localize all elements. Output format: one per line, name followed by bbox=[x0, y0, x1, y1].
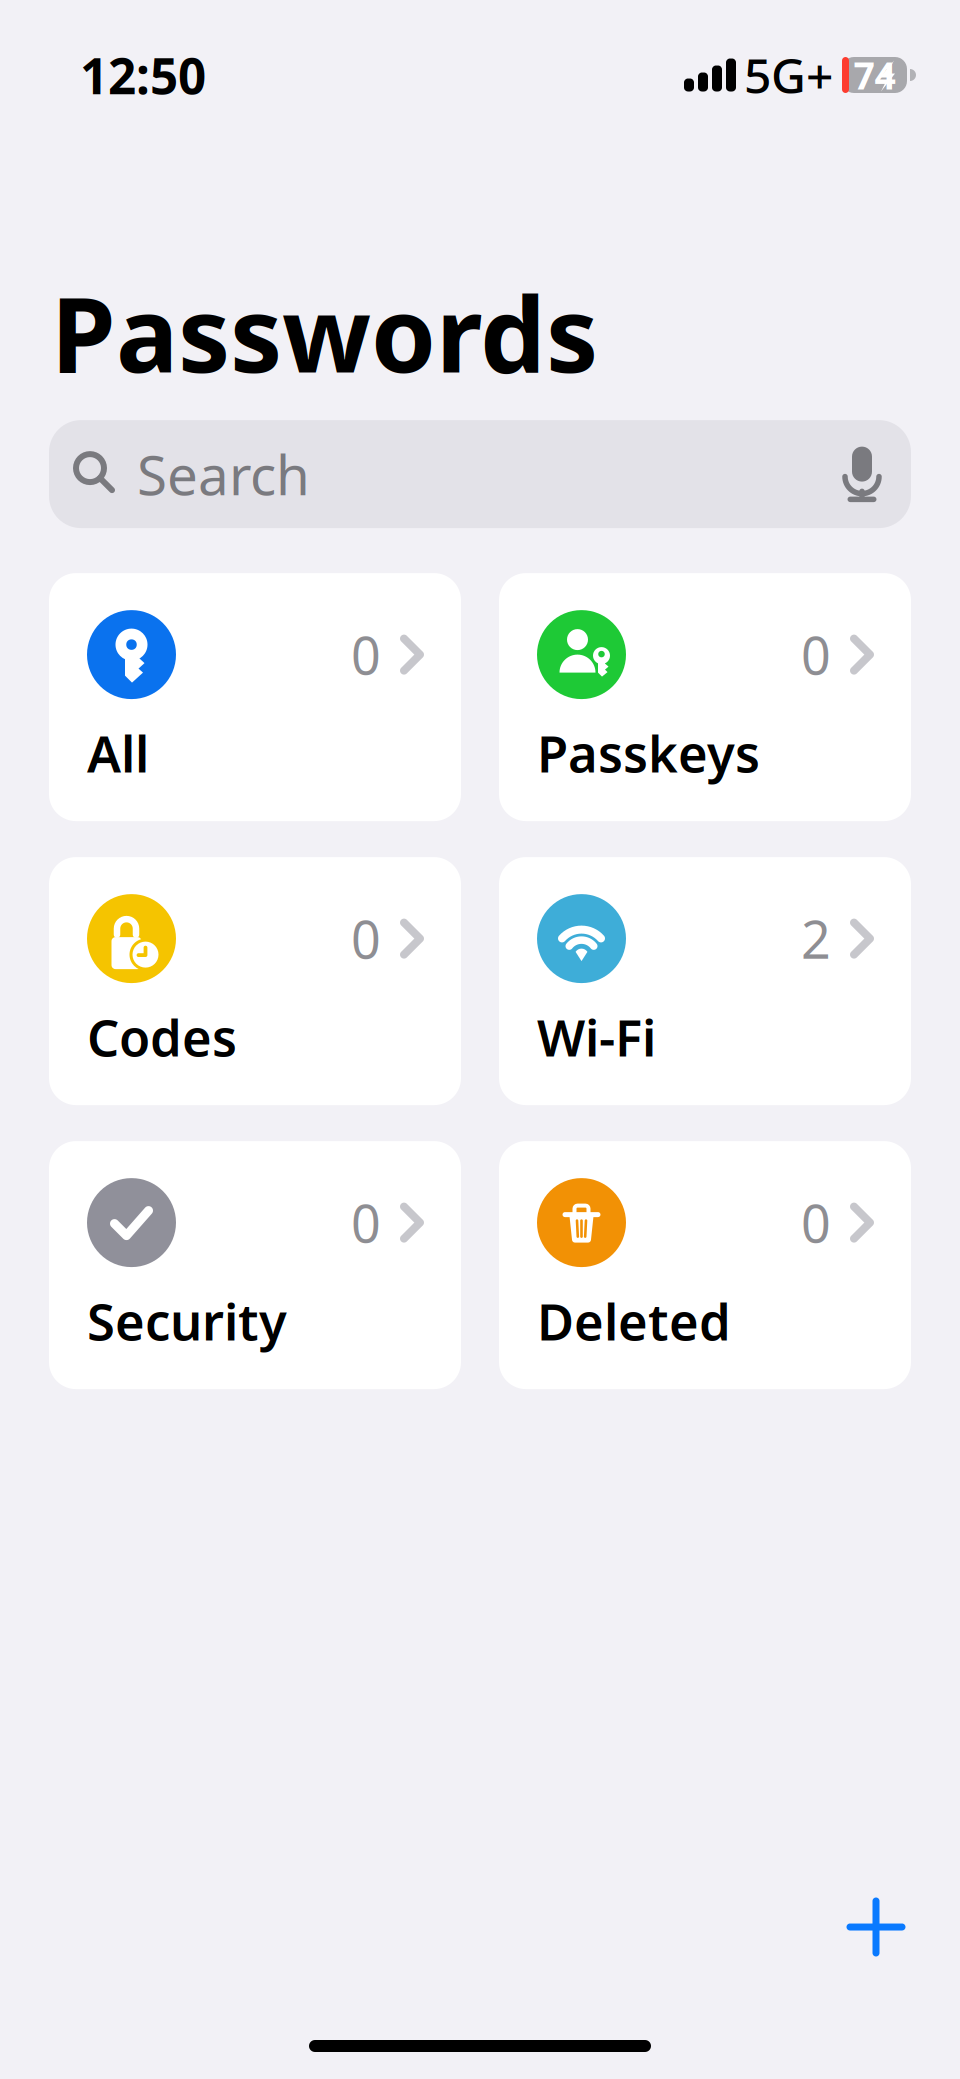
button[interactable]: Add password bbox=[824, 1875, 928, 1979]
staticText: 74 bbox=[853, 50, 895, 100]
staticText: 2 bbox=[801, 904, 831, 973]
button[interactable]: 0 bbox=[499, 573, 911, 821]
staticText: 0 bbox=[351, 1188, 381, 1257]
staticText: 5G+ bbox=[744, 43, 833, 107]
button[interactable]: 0 bbox=[499, 1141, 911, 1389]
staticText: Codes bbox=[87, 1003, 237, 1070]
staticText: 0 bbox=[351, 620, 381, 689]
button[interactable]: 2 bbox=[499, 857, 911, 1105]
staticText: Wi-Fi bbox=[537, 1003, 656, 1070]
staticText: Passkeys bbox=[537, 719, 760, 786]
button[interactable]: 0 bbox=[49, 1141, 461, 1389]
staticText: Passwords bbox=[51, 263, 598, 401]
staticText: Security bbox=[87, 1287, 287, 1354]
staticText: All bbox=[87, 719, 149, 786]
button[interactable]: 0 bbox=[49, 857, 461, 1105]
button[interactable]: 0 bbox=[49, 573, 461, 821]
button[interactable]: Search bbox=[49, 420, 911, 528]
staticText: 0 bbox=[801, 620, 831, 689]
staticText: 0 bbox=[801, 1188, 831, 1257]
staticText: Search bbox=[137, 438, 310, 510]
staticText: Deleted bbox=[537, 1287, 731, 1354]
staticText: 12:50 bbox=[80, 42, 206, 108]
staticText: 0 bbox=[351, 904, 381, 973]
